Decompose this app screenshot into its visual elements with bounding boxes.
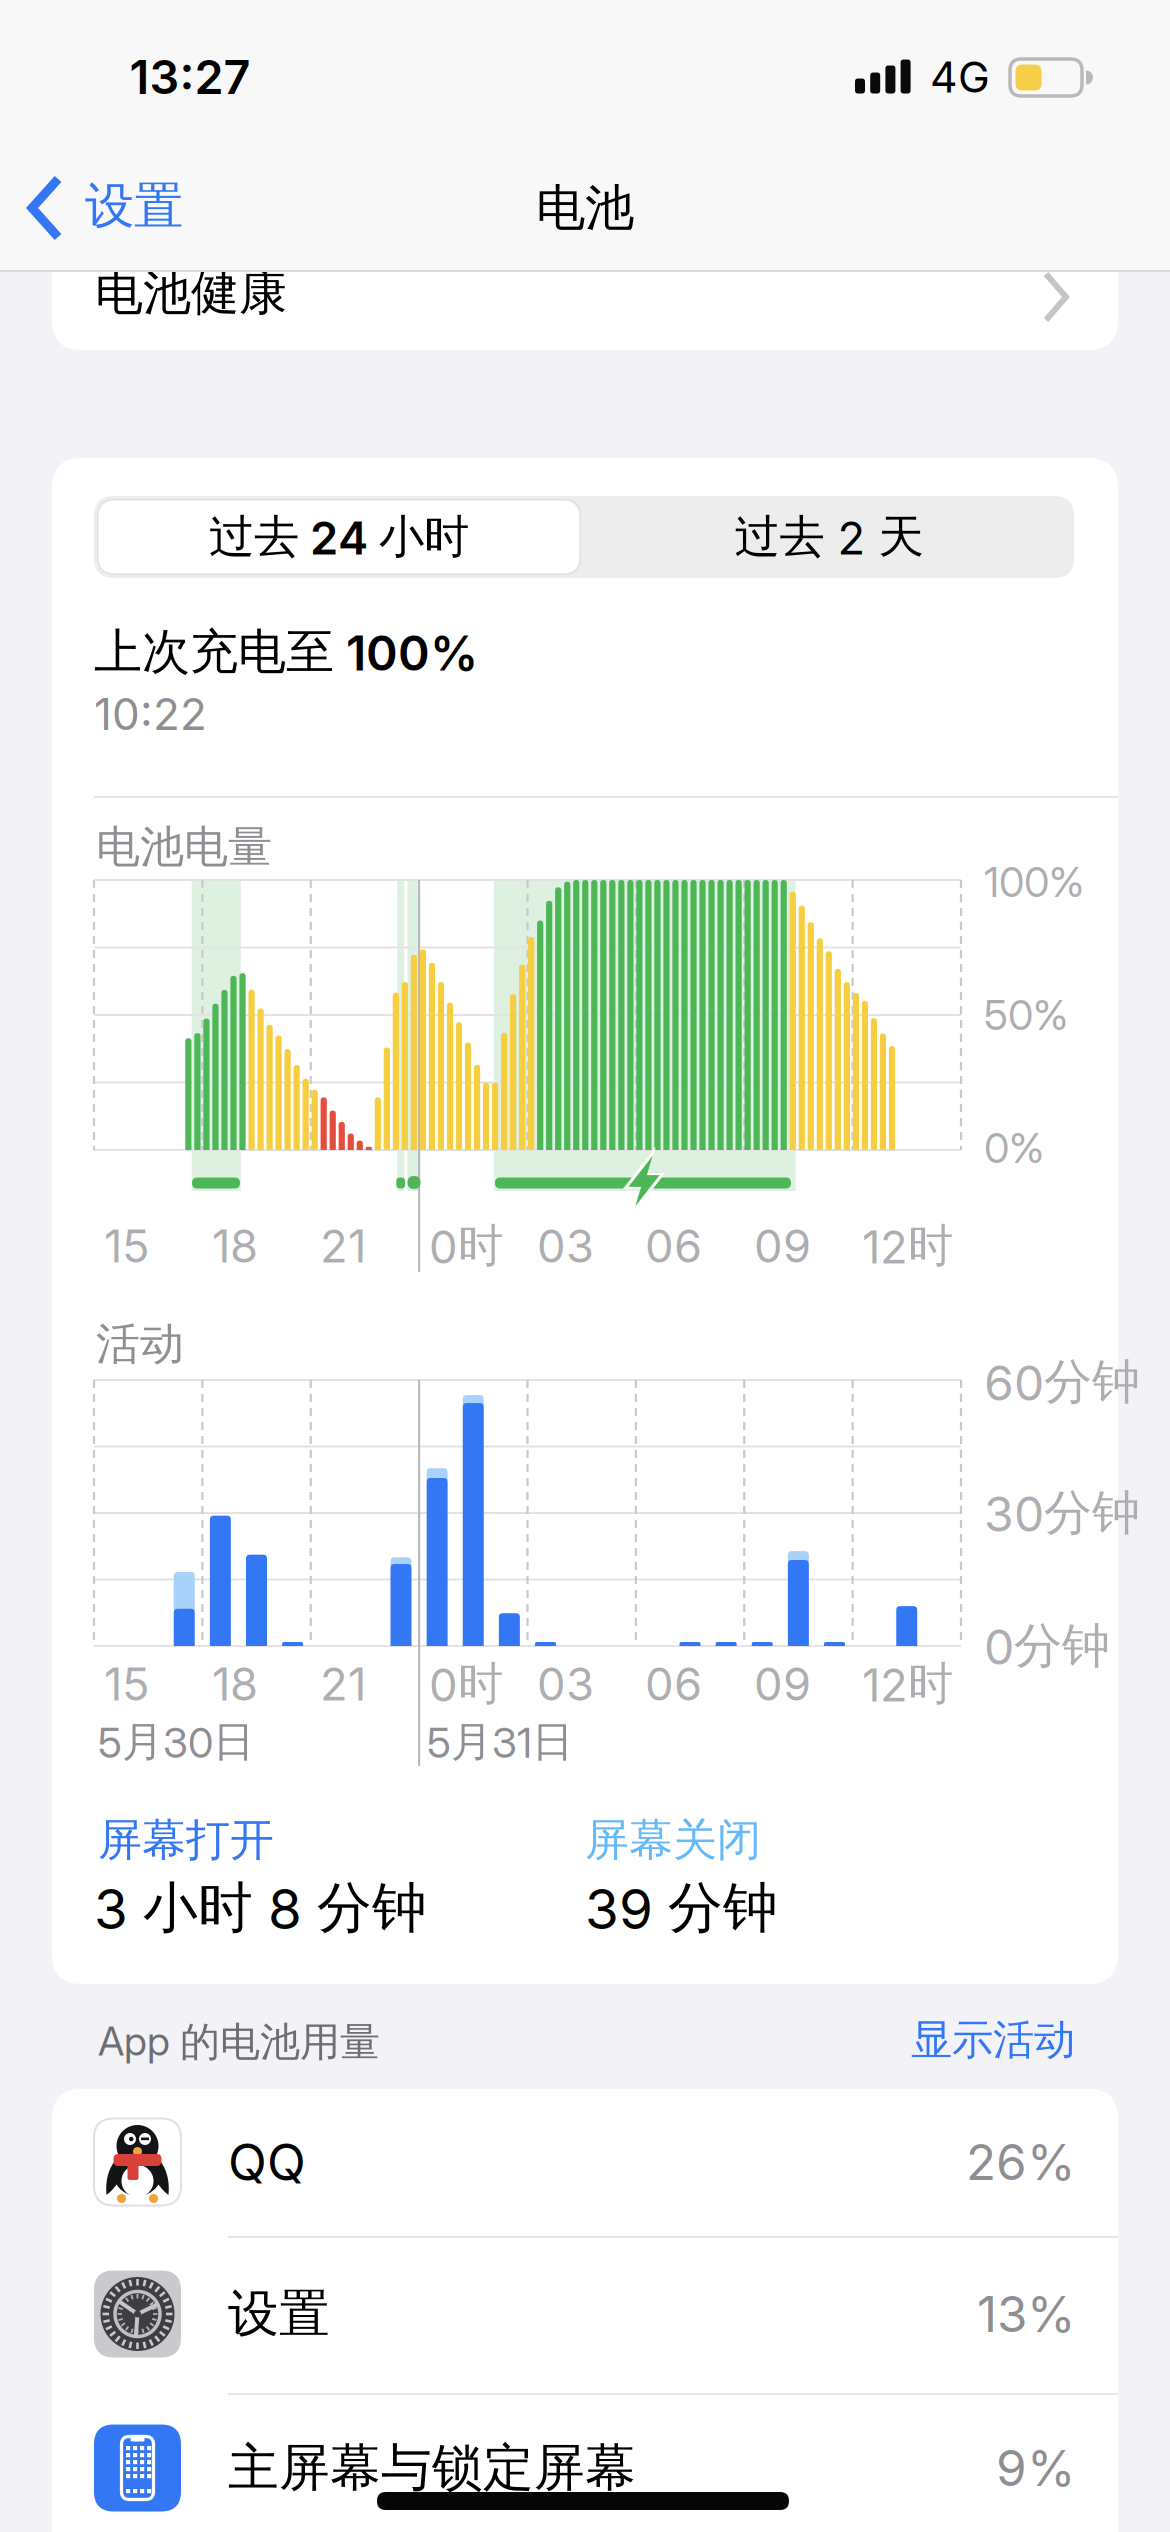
staticText: 18 xyxy=(212,1657,258,1711)
staticText: 12时 xyxy=(862,1656,953,1712)
staticText: 06 xyxy=(645,1219,702,1273)
button[interactable]: 显示活动 xyxy=(815,2000,1075,2080)
button[interactable]: 电池健康 xyxy=(52,240,1118,350)
staticText: 显示活动 xyxy=(911,2015,1075,2065)
staticText: 60分钟 xyxy=(984,1352,1140,1411)
button[interactable]: 过去 2 天 xyxy=(584,496,1074,578)
button[interactable]: 主屏幕与锁定屏幕 xyxy=(0,2390,1170,2532)
staticText: 21 xyxy=(320,1657,366,1711)
staticText: 100% xyxy=(984,858,1084,906)
staticText: 13:27 xyxy=(129,49,250,105)
staticText: 13% xyxy=(977,2285,1075,2343)
staticText: 过去 2 天 xyxy=(734,509,923,565)
staticText: 09 xyxy=(754,1657,811,1711)
button[interactable]: 过去 24 小时 xyxy=(94,496,678,578)
staticText: 09 xyxy=(754,1219,811,1273)
staticText: 21 xyxy=(320,1219,366,1273)
staticText: 10:22 xyxy=(94,688,207,740)
staticText: 屏幕关闭 xyxy=(585,1813,761,1867)
staticText: 15 xyxy=(104,1657,150,1711)
staticText: 30分钟 xyxy=(984,1483,1140,1542)
staticText: 电池健康 xyxy=(95,263,287,322)
staticText: 39 分钟 xyxy=(585,1874,778,1941)
staticText: 上次充电至 100% xyxy=(94,622,478,681)
staticText: 12时 xyxy=(862,1218,953,1274)
staticText: 03 xyxy=(537,1219,594,1273)
staticText: 设置 xyxy=(228,2283,330,2345)
staticText: 0分钟 xyxy=(984,1616,1110,1675)
staticText: 26% xyxy=(966,2133,1075,2191)
staticText: App 的电池用量 xyxy=(98,2017,380,2067)
staticText: 电池电量 xyxy=(96,820,272,874)
staticText: 0时 xyxy=(429,1218,503,1274)
button[interactable]: 返回设置 xyxy=(0,157,240,259)
staticText: 活动 xyxy=(96,1317,184,1371)
staticText: 03 xyxy=(537,1657,594,1711)
staticText: QQ xyxy=(228,2132,306,2192)
staticText: 15 xyxy=(104,1219,150,1273)
button[interactable]: 设置 xyxy=(0,2236,1170,2392)
staticText: 0时 xyxy=(429,1656,503,1712)
staticText: 50% xyxy=(984,991,1068,1039)
staticText: 9% xyxy=(996,2439,1075,2497)
staticText: 屏幕打开 xyxy=(98,1813,274,1867)
staticText: 18 xyxy=(212,1219,258,1273)
staticText: 5月30日 xyxy=(98,1717,254,1767)
staticText: 过去 24 小时 xyxy=(209,509,469,565)
button[interactable]: QQ xyxy=(0,2084,1170,2240)
staticText: 设置 xyxy=(85,176,183,236)
staticText: 06 xyxy=(645,1657,702,1711)
staticText: 主屏幕与锁定屏幕 xyxy=(228,2437,636,2499)
staticText: 5月31日 xyxy=(427,1717,573,1767)
staticText: 4G xyxy=(930,52,990,102)
staticText: 3 小时 8 分钟 xyxy=(94,1874,427,1941)
staticText: 电池 xyxy=(536,178,634,238)
staticText: 0% xyxy=(984,1124,1044,1172)
